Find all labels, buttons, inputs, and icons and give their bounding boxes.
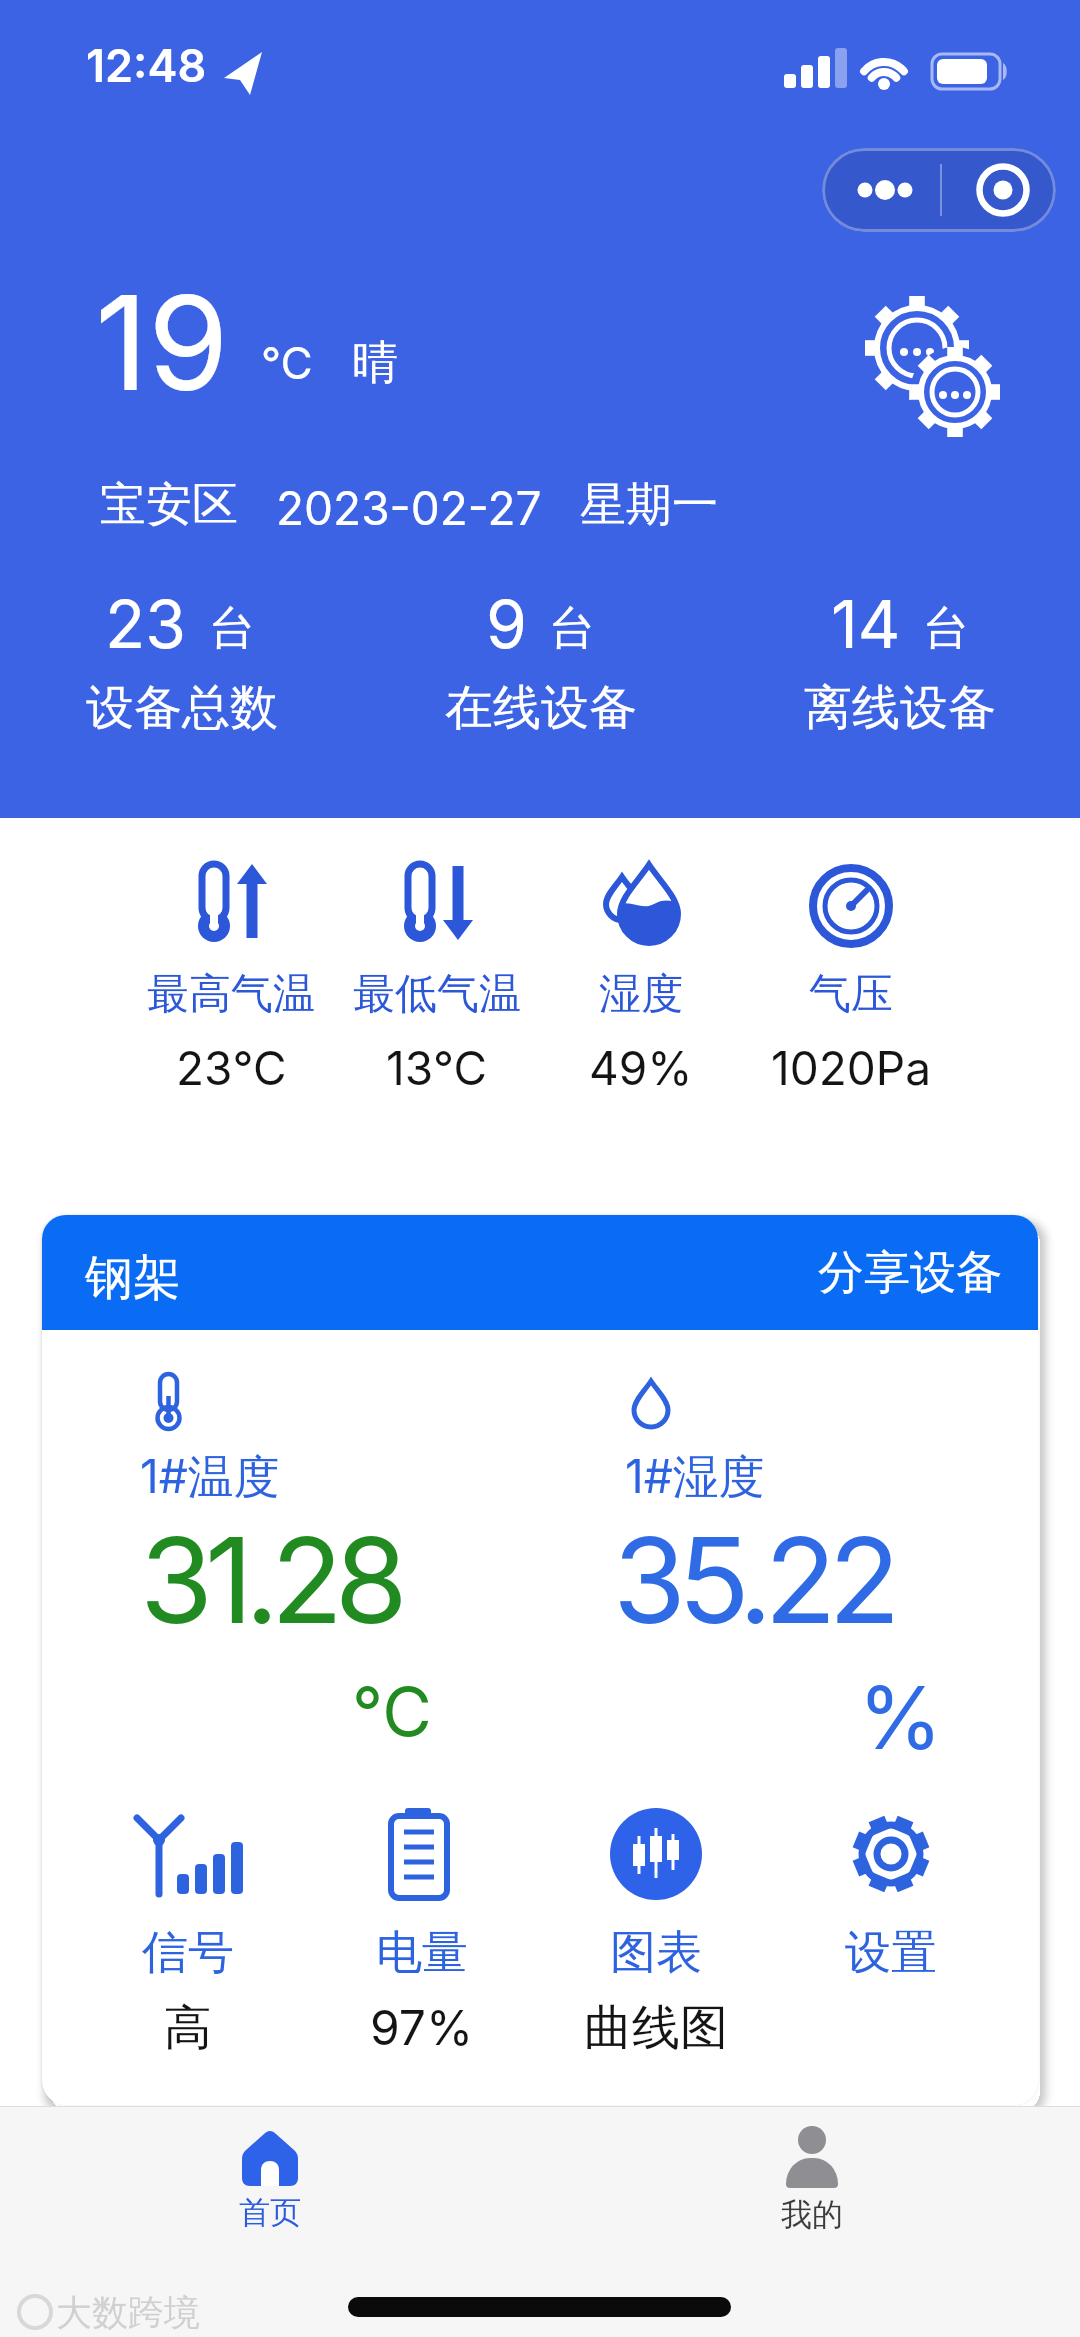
staticText: 1#温度 [140, 1448, 280, 1506]
staticText: 9 [486, 584, 527, 664]
staticText: 1#湿度 [625, 1448, 765, 1506]
button[interactable]: 首页 [170, 2112, 370, 2252]
button[interactable] [546, 1800, 766, 2080]
staticText: 宝安区 [100, 476, 238, 534]
button[interactable] [312, 1800, 532, 2080]
staticText: 星期一 [580, 476, 718, 534]
staticText: 在线设备 [445, 678, 637, 738]
staticText: 最高气温 [147, 968, 315, 1021]
staticText: ℃ [261, 336, 313, 389]
staticText: 2023-02-27 [276, 480, 542, 536]
staticText: 设备总数 [86, 678, 278, 738]
staticText: 19 [95, 264, 229, 421]
staticText: 分享设备 [818, 1244, 1002, 1302]
staticText: 23 [105, 584, 187, 664]
staticText: 信号 [142, 1924, 234, 1982]
button[interactable]: 我的 [712, 2112, 912, 2252]
staticText: 台 [923, 600, 969, 658]
staticText: 97% [370, 1998, 474, 2056]
staticText: 钢架 [85, 1248, 181, 1308]
staticText: 湿度 [599, 968, 683, 1021]
staticText: 高 [164, 1998, 212, 2058]
staticText: 13℃ [386, 1040, 488, 1096]
button[interactable] [822, 148, 1056, 232]
staticText: 曲线图 [584, 1998, 728, 2058]
staticText: 31.28 [140, 1509, 400, 1652]
staticText: 气压 [809, 968, 893, 1021]
staticText: 台 [209, 600, 255, 658]
button[interactable] [781, 1800, 1001, 2080]
button[interactable]: 分享设备 [800, 1230, 1020, 1316]
staticText: 大数跨境 [56, 2290, 200, 2335]
staticText: 1020Pa [771, 1040, 932, 1096]
staticText: 35.22 [613, 1509, 893, 1652]
staticText: 23℃ [176, 1040, 287, 1096]
staticText: 台 [549, 600, 595, 658]
button[interactable] [855, 288, 1005, 438]
staticText: ℃ [352, 1670, 432, 1752]
staticText: 49% [589, 1040, 693, 1096]
staticText: 最低气温 [353, 968, 521, 1021]
staticText: % [858, 1666, 943, 1770]
button[interactable] [78, 1800, 298, 2080]
staticText: 我的 [781, 2195, 843, 2234]
staticText: 首页 [239, 2193, 301, 2232]
staticText: 晴 [352, 334, 398, 392]
staticText: 电量 [376, 1924, 468, 1982]
staticText: 图表 [610, 1924, 702, 1982]
staticText: 12:48 [86, 38, 207, 92]
staticText: 离线设备 [804, 678, 996, 738]
staticText: 14 [831, 584, 901, 664]
staticText: 设置 [845, 1924, 937, 1982]
